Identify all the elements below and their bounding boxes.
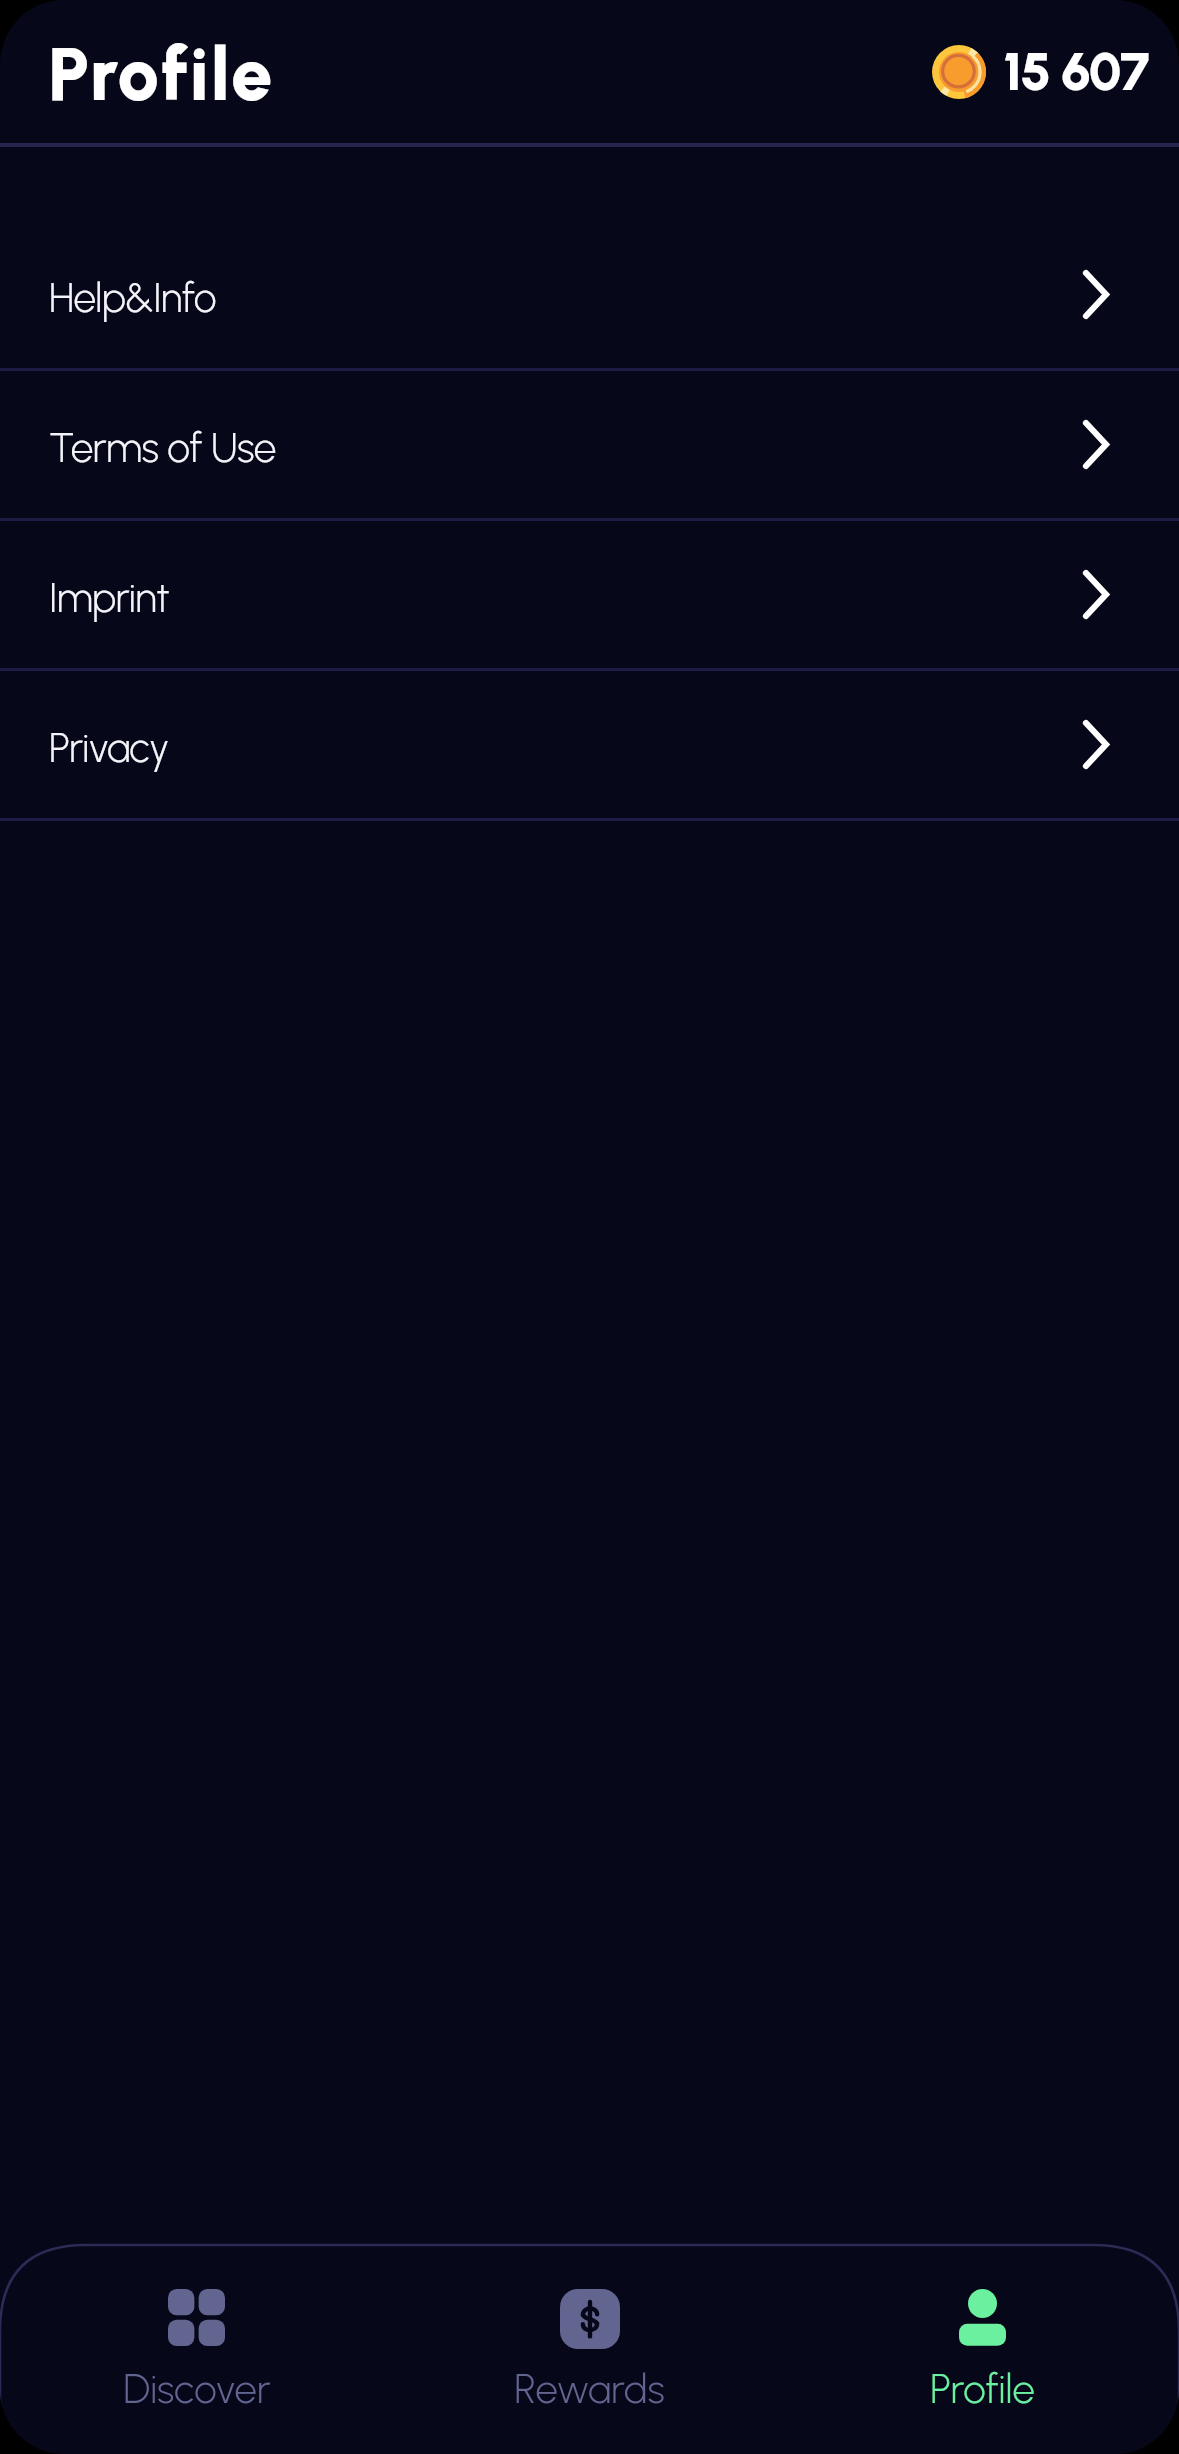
staticText: Rewards bbox=[514, 2365, 665, 2413]
staticText: Profile bbox=[48, 30, 275, 119]
button[interactable]: Coin balance bbox=[932, 40, 1148, 104]
button[interactable]: Rewards bbox=[393, 2245, 786, 2454]
button[interactable]: Terms of Use bbox=[0, 371, 1179, 521]
staticText: Privacy bbox=[49, 724, 169, 773]
button[interactable]: Profile bbox=[786, 2245, 1179, 2454]
staticText: 15 607 bbox=[1003, 40, 1148, 104]
button[interactable]: Help&Info bbox=[0, 221, 1179, 371]
staticText: Discover bbox=[123, 2365, 271, 2413]
staticText: Help&Info bbox=[49, 274, 216, 323]
staticText: Profile bbox=[930, 2365, 1035, 2413]
staticText: Terms of Use bbox=[49, 424, 276, 473]
staticText: Imprint bbox=[49, 574, 170, 623]
other: Coin balance bbox=[932, 45, 986, 99]
button[interactable]: Discover bbox=[0, 2245, 393, 2454]
button[interactable]: Privacy bbox=[0, 671, 1179, 821]
button[interactable]: Imprint bbox=[0, 521, 1179, 671]
